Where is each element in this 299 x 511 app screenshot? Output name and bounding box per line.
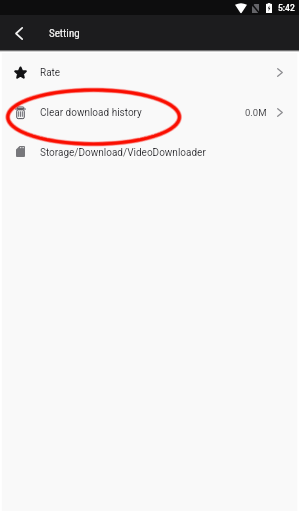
button[interactable]: Storage/Download/VideoDownloader (0, 133, 299, 173)
button[interactable]: Rate (0, 53, 299, 93)
staticText: Setting (49, 27, 80, 40)
button[interactable]: Back (7, 22, 30, 45)
staticText: Storage/Download/VideoDownloader (40, 147, 206, 159)
staticText: 5:42 (278, 3, 295, 13)
staticText: Clear download history (40, 107, 142, 119)
button[interactable]: Clear download history (0, 93, 299, 133)
staticText: 0.0M (245, 107, 267, 118)
staticText: Rate (40, 67, 61, 79)
